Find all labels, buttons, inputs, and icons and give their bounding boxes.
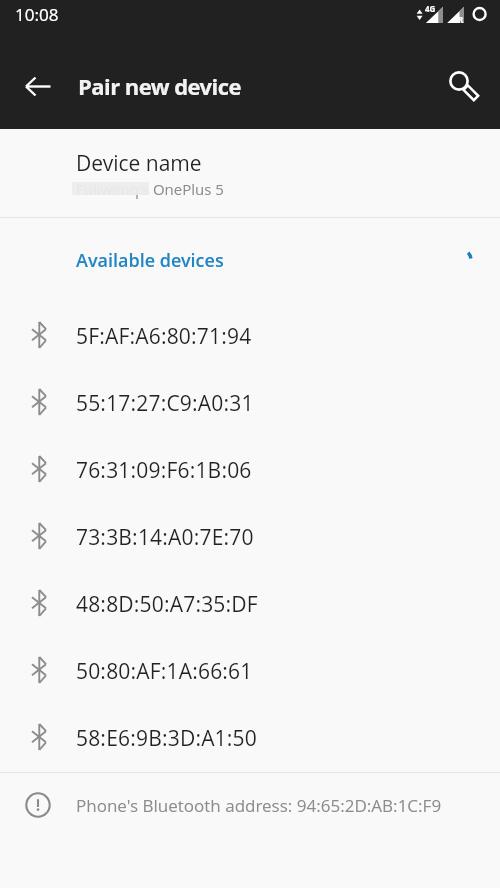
button[interactable]: 5F:AF:A6:80:71:94 (0, 303, 500, 370)
staticText: 76:31:09:F6:1B:06 (76, 456, 252, 485)
staticText: 48:8D:50:A7:35:DF (76, 590, 258, 619)
staticText: 50:80:AF:1A:66:61 (76, 657, 253, 686)
staticText: Available devices (76, 248, 224, 273)
button[interactable]: Device name (0, 129, 500, 217)
staticText: R (458, 14, 464, 25)
staticText: Phone's Bluetooth address: 94:65:2D:AB:1… (76, 794, 442, 817)
staticText: 4G (425, 3, 436, 14)
staticText: Device name (76, 149, 202, 178)
button[interactable]: Search (436, 60, 488, 112)
button[interactable]: 55:17:27:C9:A0:31 (0, 370, 500, 437)
button[interactable]: 76:31:09:F6:1B:06 (0, 437, 500, 504)
button[interactable]: 48:8D:50:A7:35:DF (0, 571, 500, 638)
staticText: 73:3B:14:A0:7E:70 (76, 523, 254, 552)
staticText: 5F:AF:A6:80:71:94 (76, 322, 252, 351)
button[interactable]: 50:80:AF:1A:66:61 (0, 638, 500, 705)
staticText: Fuliwenq's OnePlus 5 (76, 179, 224, 199)
staticText: 58:E6:9B:3D:A1:50 (76, 724, 257, 753)
button[interactable]: 73:3B:14:A0:7E:70 (0, 504, 500, 571)
button[interactable]: 58:E6:9B:3D:A1:50 (0, 705, 500, 772)
staticText: 55:17:27:C9:A0:31 (76, 389, 254, 418)
button[interactable]: Back (12, 60, 64, 112)
staticText: 10:08 (15, 3, 59, 26)
staticText: Pair new device (78, 71, 241, 101)
